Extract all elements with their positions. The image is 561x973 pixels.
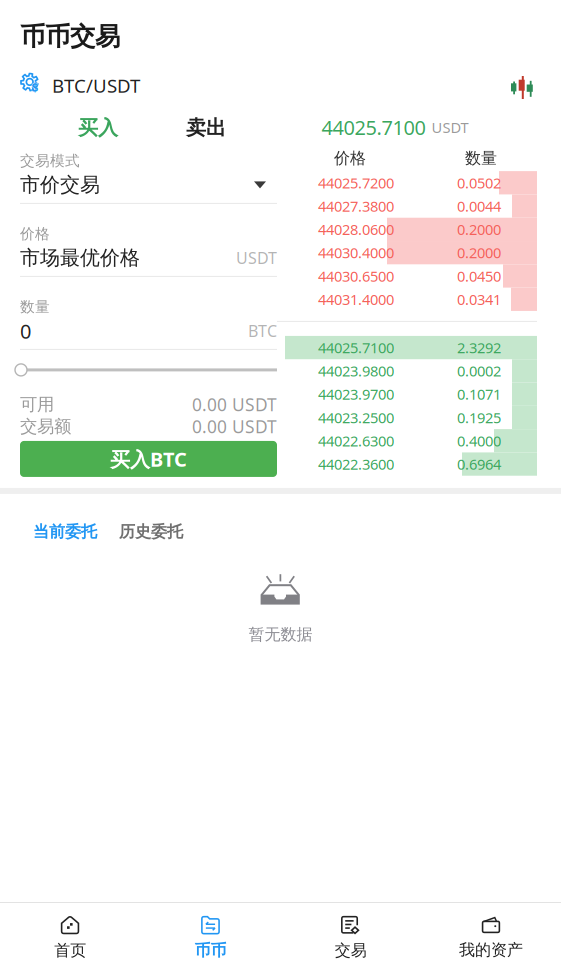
staticText: 币币交易 <box>20 21 120 52</box>
staticText: 44030.4000 <box>318 243 394 262</box>
button[interactable]: 币币 <box>140 916 280 960</box>
staticText: 44022.6300 <box>318 431 394 450</box>
button[interactable]: 买入 <box>20 116 145 140</box>
staticText: 交易额 <box>20 416 71 437</box>
staticText: 44025.7100 <box>318 338 394 357</box>
staticText: 交易 <box>335 941 367 960</box>
staticText: 卖出 <box>186 116 226 140</box>
staticText: 0.2000 <box>457 220 501 239</box>
staticText: 0.1071 <box>457 384 501 404</box>
staticText: 44028.0600 <box>318 220 394 239</box>
staticText: 44031.4000 <box>318 289 394 309</box>
staticText: 价格 <box>334 148 366 168</box>
staticText: 0.0002 <box>457 361 501 381</box>
staticText: 44030.6500 <box>318 266 394 286</box>
staticText: 当前委托 <box>33 522 97 542</box>
staticText: USDT <box>431 117 468 137</box>
staticText: 数量 <box>465 148 497 168</box>
staticText: 44023.9800 <box>318 361 394 381</box>
button[interactable]: 我的资产 <box>421 916 561 960</box>
staticText: 市场最优价格 <box>20 246 140 270</box>
staticText: 0.0044 <box>457 196 501 216</box>
staticText: $ <box>31 79 39 96</box>
staticText: 币币 <box>194 941 226 960</box>
staticText: 买入 <box>78 116 118 140</box>
staticText: 44023.2500 <box>318 408 394 427</box>
staticText: 0.4000 <box>457 431 501 450</box>
staticText: $ <box>32 79 39 95</box>
button[interactable]: 卖出 <box>145 116 253 140</box>
staticText: 0.2000 <box>457 243 501 262</box>
staticText: 首页 <box>54 941 86 960</box>
staticText: 44027.3800 <box>318 196 394 216</box>
staticText: 暂无数据 <box>248 625 312 644</box>
staticText: 44025.7100 <box>321 114 425 140</box>
button[interactable]: 当前委托 <box>33 522 97 542</box>
staticText: BTC <box>248 320 277 341</box>
staticText: 2.3292 <box>457 338 501 357</box>
staticText: 44022.3600 <box>318 454 394 474</box>
staticText: 44023.9700 <box>318 384 394 404</box>
staticText: 我的资产 <box>459 940 523 960</box>
staticText: BTC/USDT <box>52 73 140 98</box>
staticText: 44025.7200 <box>318 173 394 192</box>
staticText: 市价交易 <box>20 173 100 197</box>
button[interactable]: 历史委托 <box>97 522 183 542</box>
staticText: 价格 <box>20 225 50 243</box>
staticText: USDT <box>236 247 277 268</box>
button[interactable]: $ <box>20 73 140 98</box>
staticText: 0.0502 <box>457 173 501 192</box>
button[interactable]: 首页 <box>0 916 140 960</box>
staticText: 历史委托 <box>119 522 183 542</box>
button[interactable]: 交易 <box>280 916 421 960</box>
staticText: 可用 <box>20 394 54 415</box>
staticText: 买入BTC <box>110 446 187 472</box>
button[interactable]: 交易模式 <box>20 152 277 204</box>
staticText: 0.1925 <box>457 408 501 427</box>
staticText: 0.6964 <box>457 454 501 474</box>
staticText: 0.00 USDT <box>192 393 277 416</box>
staticText: 交易模式 <box>20 152 80 170</box>
staticText: 0.0450 <box>457 266 501 286</box>
staticText: 0 <box>20 318 31 344</box>
button[interactable]: 买入BTC <box>20 441 277 477</box>
staticText: 0.00 USDT <box>192 415 277 438</box>
button[interactable]: K line chart <box>511 74 533 97</box>
staticText: 数量 <box>20 298 50 316</box>
staticText: 0.0341 <box>457 289 501 309</box>
